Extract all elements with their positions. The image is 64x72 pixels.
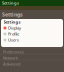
staticText: Settings: [2, 0, 19, 6]
button[interactable]: Preferences: [0, 49, 64, 55]
button[interactable]: Display: [1, 25, 63, 31]
staticText: Users: [8, 37, 19, 43]
staticText: Profile: [8, 31, 19, 37]
staticText: Preferences: [3, 49, 24, 55]
staticText: Display: [8, 25, 21, 31]
button[interactable]: Profile: [1, 31, 63, 37]
staticText: Advanced: [3, 61, 20, 67]
button[interactable]: Advanced: [0, 61, 64, 67]
staticText: Settings: [2, 11, 23, 18]
staticText: Network: [3, 55, 18, 61]
button[interactable]: Network: [0, 55, 64, 61]
staticText: Settings: [3, 19, 20, 25]
button[interactable]: Users: [1, 37, 63, 43]
